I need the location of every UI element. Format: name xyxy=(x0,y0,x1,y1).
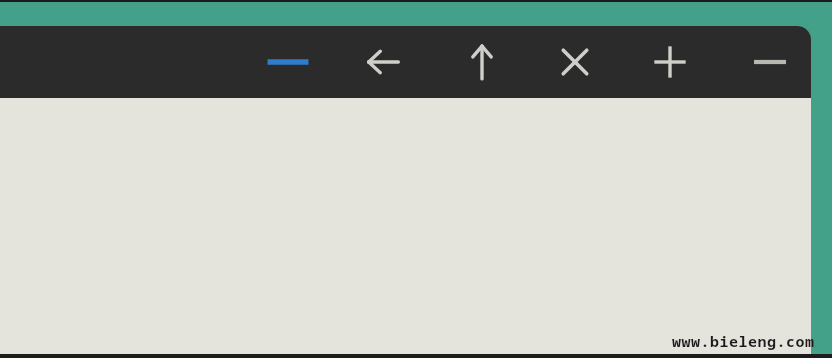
staticText: www.bieleng.com xyxy=(672,331,815,351)
button[interactable]: Add xyxy=(640,38,700,86)
button[interactable]: Back xyxy=(353,38,413,86)
button[interactable]: Menu xyxy=(258,38,318,86)
button[interactable]: Up xyxy=(452,38,512,86)
button[interactable]: Remove xyxy=(740,38,800,86)
button[interactable]: Close xyxy=(545,38,605,86)
